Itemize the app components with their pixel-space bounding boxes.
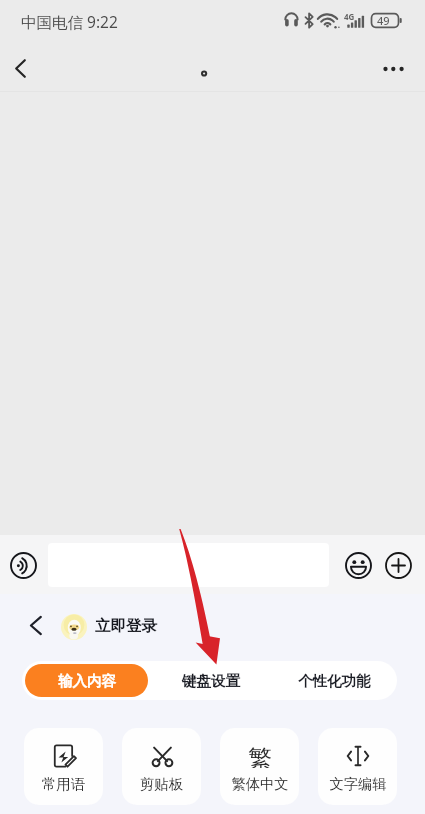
- staticText: 文字编辑: [329, 775, 387, 793]
- button[interactable]: Back: [2, 50, 38, 86]
- button[interactable]: 常用语: [24, 728, 103, 805]
- button[interactable]: Add: [380, 547, 416, 583]
- staticText: 中国电信 9:22: [21, 11, 118, 32]
- button[interactable]: More options: [376, 50, 414, 88]
- staticText: 4G: [344, 11, 355, 22]
- staticText: 剪贴板: [140, 775, 183, 793]
- staticText: 输入内容: [58, 672, 116, 690]
- button[interactable]: Emoji: [340, 547, 376, 583]
- button[interactable]: 繁: [220, 728, 299, 805]
- button[interactable]: [48, 543, 329, 587]
- button[interactable]: 输入内容: [25, 664, 148, 697]
- button[interactable]: 立即登录: [95, 616, 157, 636]
- staticText: 繁: [248, 744, 272, 768]
- staticText: 个性化功能: [298, 672, 371, 690]
- staticText: 49: [377, 13, 390, 28]
- button[interactable]: Back: [19, 609, 52, 642]
- button[interactable]: 文字编辑: [318, 728, 397, 805]
- staticText: 常用语: [42, 775, 85, 793]
- button[interactable]: Voice input: [5, 547, 41, 583]
- button[interactable]: 键盘设置: [151, 661, 271, 700]
- staticText: 键盘设置: [182, 672, 240, 690]
- button[interactable]: 剪贴板: [122, 728, 201, 805]
- button[interactable]: 个性化功能: [271, 661, 397, 700]
- staticText: 繁体中文: [231, 775, 289, 793]
